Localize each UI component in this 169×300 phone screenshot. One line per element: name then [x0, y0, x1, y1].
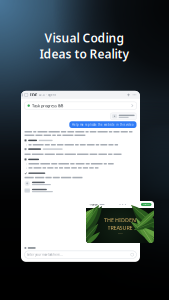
staticText: Ideas to Reality [39, 46, 129, 62]
staticText: IDE [30, 92, 37, 97]
staticText: TREASURE [107, 224, 132, 231]
button[interactable]: Task progress 8/8 [24, 102, 136, 109]
staticText: Task progress 8/8 [32, 103, 63, 108]
button[interactable]: New tab [126, 93, 130, 97]
button[interactable]: Enter your new task here... [24, 251, 136, 258]
staticText: Visual Coding [44, 30, 124, 46]
button[interactable]: More options [132, 93, 136, 97]
staticText: v2.4 · agent [39, 93, 56, 97]
staticText: Published [143, 204, 150, 205]
staticText: THE HIDDEN [104, 217, 136, 224]
staticText: a novel [117, 232, 122, 234]
button[interactable] [24, 181, 69, 186]
staticText: Preview [88, 203, 97, 206]
staticText: Help me replicate the website in this vi… [72, 123, 134, 126]
staticText: Enter your new task here... [27, 253, 63, 256]
